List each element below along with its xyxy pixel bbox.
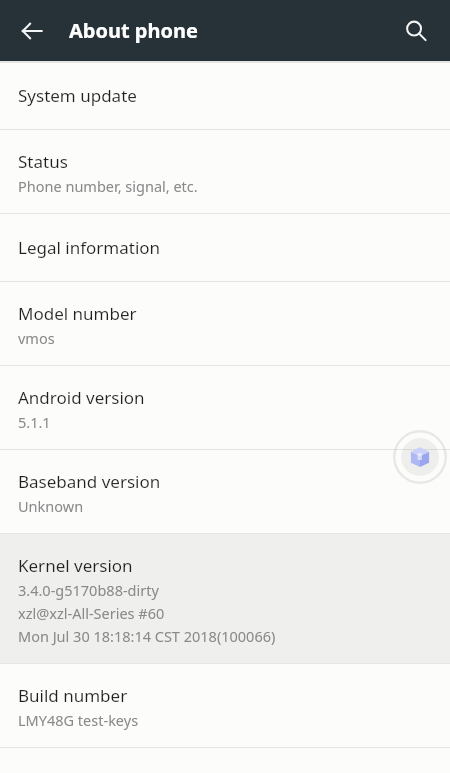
- staticText: xzl@xzl-All-Series #60: [18, 603, 165, 623]
- staticText: Kernel version: [18, 554, 133, 577]
- staticText: Build number: [18, 684, 128, 707]
- staticText: vmos: [18, 328, 55, 348]
- staticText: Mon Jul 30 18:18:14 CST 2018(100066): [18, 626, 276, 646]
- staticText: Phone number, signal, etc.: [18, 176, 198, 196]
- button[interactable]: Back: [8, 7, 56, 55]
- staticText: Legal information: [18, 236, 161, 259]
- button[interactable]: Android version: [0, 366, 450, 449]
- staticText: LMY48G test-keys: [18, 710, 139, 730]
- staticText: Baseband version: [18, 470, 161, 493]
- staticText: Android version: [18, 386, 145, 409]
- button[interactable]: Baseband version: [0, 450, 450, 533]
- button[interactable]: Status: [0, 130, 450, 213]
- button[interactable]: Kernel version: [0, 534, 450, 663]
- staticText: Unknown: [18, 496, 84, 516]
- button[interactable]: Legal information: [0, 214, 450, 281]
- staticText: 3.4.0-g5170b88-dirty: [18, 580, 159, 600]
- button[interactable]: Search: [392, 7, 440, 55]
- staticText: System update: [18, 84, 137, 107]
- button[interactable]: Model number: [0, 282, 450, 365]
- staticText: Model number: [18, 302, 137, 325]
- staticText: About phone: [69, 17, 198, 44]
- button[interactable]: Build number: [0, 664, 450, 747]
- staticText: 5.1.1: [18, 412, 51, 432]
- button[interactable]: System update: [0, 63, 450, 129]
- button[interactable]: VMOS floating window: [392, 429, 448, 485]
- staticText: Status: [18, 150, 68, 173]
